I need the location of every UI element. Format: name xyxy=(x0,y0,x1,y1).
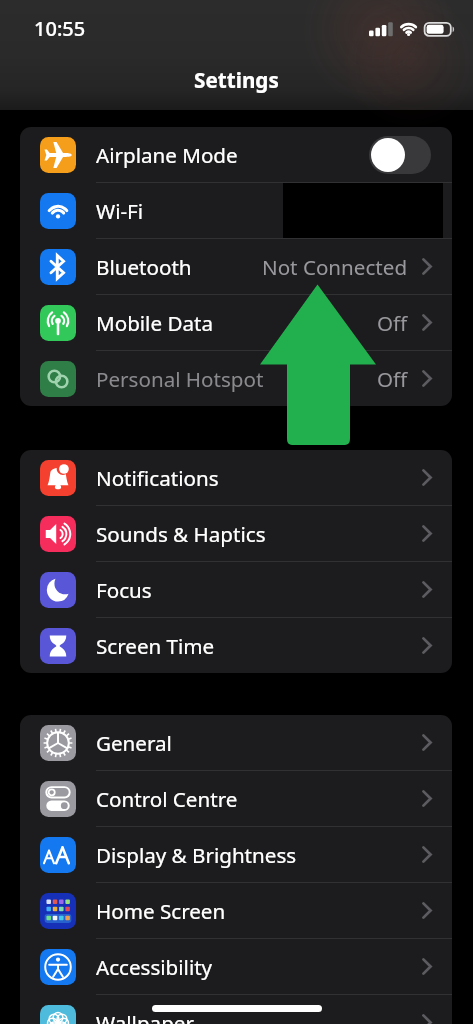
staticText: Home Screen xyxy=(96,897,226,925)
button[interactable]: Personal Hotspot xyxy=(20,351,452,406)
button[interactable]: General xyxy=(20,715,452,770)
staticText: Accessibility xyxy=(96,953,213,981)
staticText: Off xyxy=(377,365,408,393)
button[interactable]: Sounds & Haptics xyxy=(20,506,452,561)
staticText: Not Connected xyxy=(262,253,408,281)
staticText: Screen Time xyxy=(96,632,215,660)
staticText: Settings xyxy=(194,66,279,94)
button[interactable]: Screen Time xyxy=(20,618,452,673)
button[interactable]: Home Screen xyxy=(20,883,452,938)
button[interactable]: Focus xyxy=(20,562,452,617)
staticText: Personal Hotspot xyxy=(96,365,264,393)
staticText: Bluetooth xyxy=(96,253,192,281)
staticText: Off xyxy=(377,309,408,337)
button[interactable]: Notifications xyxy=(20,450,452,505)
staticText: Sounds & Haptics xyxy=(96,520,266,548)
staticText: Notifications xyxy=(96,464,219,492)
button[interactable]: Accessibility xyxy=(20,939,452,994)
staticText: Wi-Fi xyxy=(96,197,144,225)
staticText: Airplane Mode xyxy=(96,141,238,169)
staticText: General xyxy=(96,729,172,757)
button[interactable]: Mobile Data xyxy=(20,295,452,350)
staticText: Display & Brightness xyxy=(96,841,297,869)
staticText: Focus xyxy=(96,576,152,604)
staticText: 10:55 xyxy=(34,15,86,42)
button[interactable]: Bluetooth xyxy=(20,239,452,294)
staticText: Control Centre xyxy=(96,785,238,813)
staticText: Mobile Data xyxy=(96,309,213,337)
button[interactable]: Display & Brightness xyxy=(20,827,452,882)
button[interactable]: Wallpaper xyxy=(20,995,452,1024)
button[interactable]: Control Centre xyxy=(20,771,452,826)
staticText: Wallpaper xyxy=(96,1009,194,1024)
button[interactable]: Airplane Mode toggle, off xyxy=(369,136,431,174)
button[interactable]: Airplane Mode xyxy=(20,127,452,182)
button[interactable]: Wi-Fi xyxy=(20,183,452,238)
